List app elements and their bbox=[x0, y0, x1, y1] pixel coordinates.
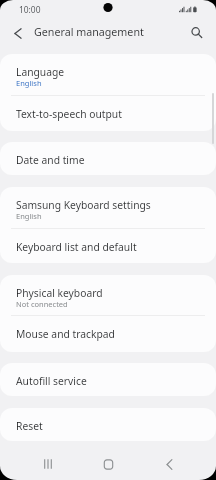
button[interactable]: Recent apps bbox=[33, 451, 62, 477]
button[interactable]: Text-to-speech output bbox=[0, 96, 216, 131]
button[interactable]: Autofill service bbox=[0, 363, 216, 396]
button[interactable]: Samsung Keyboard settings bbox=[0, 187, 216, 229]
button[interactable]: Physical keyboard bbox=[0, 275, 216, 316]
staticText: Physical keyboard bbox=[16, 286, 103, 300]
staticText: Reset bbox=[16, 419, 43, 433]
staticText: Date and time bbox=[16, 153, 85, 167]
button[interactable]: Mouse and trackpad bbox=[0, 316, 216, 352]
button[interactable]: Back bbox=[155, 451, 184, 477]
staticText: Not connected bbox=[16, 299, 68, 309]
staticText: Samsung Keyboard settings bbox=[16, 198, 151, 212]
staticText: Language bbox=[16, 65, 65, 79]
button[interactable]: Date and time bbox=[0, 142, 216, 175]
button[interactable]: Keyboard list and default bbox=[0, 229, 216, 263]
staticText: General management bbox=[34, 25, 144, 40]
staticText: Text-to-speech output bbox=[16, 107, 122, 121]
button[interactable]: Reset bbox=[0, 408, 216, 441]
button[interactable]: Navigate up bbox=[4, 25, 32, 42]
staticText: Autofill service bbox=[16, 374, 87, 388]
button[interactable]: Language bbox=[0, 54, 216, 96]
button[interactable]: Search bbox=[184, 24, 210, 41]
staticText: English bbox=[16, 78, 42, 88]
button[interactable]: Home bbox=[94, 451, 123, 477]
staticText: Mouse and trackpad bbox=[16, 327, 115, 341]
staticText: English bbox=[16, 211, 42, 221]
staticText: 10:00 bbox=[19, 4, 41, 15]
staticText: Keyboard list and default bbox=[16, 240, 137, 254]
